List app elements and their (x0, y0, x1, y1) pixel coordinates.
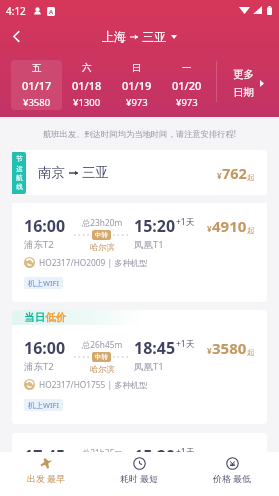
staticText: 4910 (212, 216, 247, 236)
staticText: 3580 (212, 338, 247, 358)
button[interactable]: 耗时 最短 (93, 452, 186, 496)
button[interactable]: 价格 最低 (186, 452, 279, 496)
staticText: 哈尔滨 (90, 364, 115, 374)
staticText: ¥ (207, 345, 212, 356)
button[interactable]: 当日 (12, 310, 267, 424)
staticText: 日期 (233, 86, 254, 99)
staticText: 航班出发、到达时间均为当地时间，请注意安排行程! (43, 128, 237, 139)
staticText: +1天 (176, 338, 195, 350)
staticText: HO2317/HO1755 | 多种机型 (39, 379, 148, 390)
staticText: 总21h35m (82, 447, 123, 458)
staticText: 4:12 (6, 4, 26, 18)
staticText: 三亚 (82, 164, 109, 181)
staticText: 浦东T2 (24, 360, 54, 373)
staticText: 凤凰T1 (134, 360, 164, 373)
button[interactable]: 五 (11, 60, 62, 110)
staticText: 浦东T2 (24, 238, 54, 251)
staticText: 一 (182, 62, 192, 74)
staticText: 六 (82, 62, 92, 74)
staticText: 五 (32, 62, 42, 74)
staticText: ¥973 (176, 96, 198, 109)
staticText: 起 (247, 226, 255, 235)
staticText: HO2317/HO2009 | 多种机型 (39, 257, 148, 268)
staticText: 4199 (212, 446, 247, 466)
button[interactable]: Back (2, 22, 30, 50)
staticText: 低价 (45, 311, 66, 324)
button[interactable]: 出发 最早 (0, 452, 93, 496)
staticText: ¥973 (126, 96, 148, 109)
staticText: 凤凰T1 (134, 238, 164, 251)
staticText: ¥3580 (23, 96, 51, 109)
button[interactable]: 节 运 航 线 (12, 150, 267, 302)
staticText: 中转 (95, 353, 108, 361)
staticText: 17:45 (24, 445, 66, 467)
button[interactable]: 六 (62, 60, 112, 110)
staticText: ¥ (217, 170, 222, 181)
button[interactable]: 更多 (217, 50, 279, 117)
staticText: 凤凰T1 (134, 468, 164, 481)
staticText: 中转 (95, 231, 108, 239)
button[interactable]: 一 (162, 60, 212, 110)
staticText: 节 运 航 线 (16, 155, 23, 191)
staticText: +1天 (176, 216, 195, 228)
staticText: +1天 (176, 446, 195, 458)
button[interactable]: 上海 (102, 29, 177, 44)
staticText: 16:00 (24, 337, 66, 359)
staticText: 出发 最早 (27, 472, 66, 484)
button[interactable]: 日 (112, 60, 162, 110)
staticText: 15:20 (134, 215, 176, 237)
staticText: 01/19 (122, 78, 152, 93)
staticText: 01/18 (72, 78, 102, 93)
staticText: 耗时 最短 (120, 472, 159, 484)
staticText: 当日 (24, 311, 45, 324)
staticText: 机上WIFI (28, 400, 59, 410)
staticText: 上海 (102, 29, 126, 44)
staticText: 机上WIFI (28, 278, 59, 288)
staticText: 日 (132, 62, 142, 74)
staticText: 哈尔滨 (90, 242, 115, 252)
staticText: 15:20 (134, 445, 176, 467)
staticText: 起 (247, 173, 255, 182)
staticText: ¥ (207, 223, 212, 234)
staticText: 浦东T2 (24, 468, 54, 481)
staticText: ¥1300 (73, 96, 101, 109)
staticText: 三亚 (142, 29, 166, 44)
staticText: 762 (222, 163, 247, 183)
staticText: 价格 最低 (213, 472, 252, 484)
staticText: 更多 (233, 68, 254, 81)
staticText: A (49, 8, 54, 16)
staticText: 18:45 (134, 337, 176, 359)
staticText: 16:00 (24, 215, 66, 237)
staticText: 01/17 (22, 78, 52, 93)
staticText: 总26h45m (82, 339, 123, 350)
staticText: 01/20 (172, 78, 202, 93)
staticText: 南京 (38, 164, 65, 181)
staticText: 起 (247, 348, 255, 357)
button[interactable]: 17:45 (12, 433, 267, 496)
staticText: 总23h20m (82, 217, 123, 228)
